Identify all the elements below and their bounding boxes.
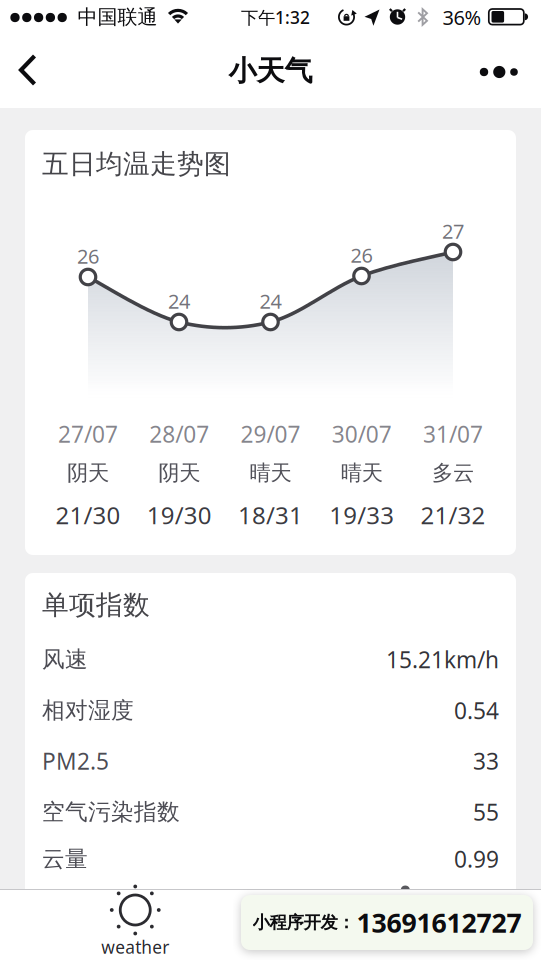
staticText: 19/33 — [329, 499, 394, 531]
staticText: 中国联通 — [77, 5, 157, 29]
staticText: 19/30 — [147, 499, 212, 531]
staticText: 18/31 — [238, 499, 303, 531]
button[interactable]: 小程序开发 13691612727 — [241, 895, 533, 950]
staticText: weather — [101, 935, 169, 958]
staticText: 0.99 — [454, 844, 499, 874]
staticText: 29/07 — [240, 419, 300, 449]
staticText: 28/07 — [149, 419, 209, 449]
staticText: 0.54 — [454, 695, 499, 725]
button[interactable]: weather — [0, 889, 270, 960]
button[interactable]: More — [467, 50, 531, 94]
staticText: 空气污染指数 — [42, 798, 180, 826]
staticText: 21/32 — [421, 499, 486, 531]
staticText: 31/07 — [423, 419, 483, 449]
staticText: 33 — [473, 746, 499, 776]
staticText: 21/30 — [55, 499, 120, 531]
staticText: 阴天 — [67, 460, 109, 486]
staticText: 27 — [442, 218, 464, 244]
staticText: 30/07 — [332, 419, 392, 449]
staticText: 晴天 — [341, 460, 383, 486]
staticText: 15.21km/h — [386, 644, 499, 674]
staticText: 27/07 — [58, 419, 118, 449]
staticText: 36% — [442, 4, 481, 30]
staticText: 相对湿度 — [42, 697, 134, 724]
staticText: 13691612727 — [356, 905, 521, 940]
staticText: 小程序开发： — [252, 912, 354, 933]
button[interactable]: Back — [0, 40, 56, 100]
staticText: 小天气 — [228, 54, 312, 88]
staticText: PM2.5 — [42, 746, 109, 776]
staticText: 云量 — [42, 845, 88, 873]
staticText: 26 — [77, 243, 99, 269]
staticText: 单项指数 — [42, 589, 150, 621]
staticText: 55 — [473, 797, 499, 827]
staticText: 下午1:32 — [241, 6, 310, 29]
staticText: 多云 — [432, 460, 474, 486]
staticText: 26 — [350, 242, 372, 268]
staticText: 24 — [168, 288, 190, 314]
staticText: 晴天 — [249, 460, 291, 486]
staticText: 五日均温走势图 — [42, 148, 231, 180]
staticText: 阴天 — [158, 460, 200, 486]
staticText: 风速 — [42, 646, 88, 673]
staticText: 24 — [259, 288, 281, 314]
